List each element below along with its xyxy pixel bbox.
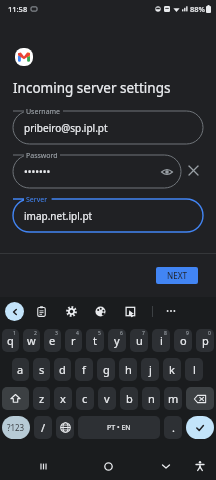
button[interactable]: x (54, 387, 72, 410)
button[interactable]: z (33, 387, 50, 410)
staticText: 8 (164, 330, 167, 337)
staticText: 2 (34, 330, 37, 337)
staticText: l (193, 362, 196, 377)
staticText: h (125, 362, 132, 377)
staticText: k (169, 362, 175, 377)
button[interactable]: Settings (62, 302, 80, 320)
button[interactable]: PT • EN (78, 416, 160, 439)
staticText: ••••••• (24, 165, 51, 179)
button[interactable]: Clear password (184, 161, 202, 179)
staticText: o (180, 333, 187, 348)
staticText: Password (26, 151, 58, 161)
button[interactable]: i (152, 329, 170, 352)
staticText: w (27, 333, 36, 348)
staticText: z (39, 391, 45, 406)
staticText: e (49, 333, 56, 348)
button[interactable]: . (164, 416, 182, 439)
staticText: PT • EN (107, 423, 131, 433)
staticText: m (168, 391, 179, 406)
button[interactable]: Backspace (186, 387, 214, 410)
staticText: 1 (13, 330, 16, 337)
button[interactable]: a (12, 358, 29, 381)
button[interactable]: Expand toolbar (5, 302, 24, 321)
staticText: 6 (120, 330, 123, 337)
button[interactable]: l (185, 358, 203, 381)
button[interactable]: j (141, 358, 159, 381)
button[interactable]: ?123 (2, 416, 30, 439)
button[interactable]: s (33, 358, 50, 381)
button[interactable]: p (196, 329, 214, 352)
button[interactable]: b (120, 387, 138, 410)
staticText: d (59, 362, 66, 377)
button[interactable]: n (142, 387, 160, 410)
button[interactable]: Stickers (121, 302, 139, 320)
staticText: t (93, 333, 97, 348)
button[interactable]: h (119, 358, 137, 381)
staticText: Server (26, 195, 48, 205)
staticText: p (202, 333, 209, 348)
button[interactable]: o (174, 329, 192, 352)
staticText: f (82, 362, 86, 377)
staticText: Username (26, 107, 61, 117)
staticText: / (41, 420, 46, 435)
button[interactable]: u (130, 329, 148, 352)
staticText: pribeiro@sp.ipl.pt (24, 121, 108, 135)
staticText: imap.net.ipl.pt (24, 209, 93, 223)
staticText: 5 (98, 330, 101, 337)
button[interactable]: Accessibility (186, 452, 214, 480)
staticText: 88% (190, 4, 205, 14)
button[interactable]: f (75, 358, 93, 381)
button[interactable] (13, 111, 203, 144)
staticText: v (104, 391, 110, 406)
staticText: b (126, 391, 133, 406)
button[interactable]: r (65, 329, 82, 352)
button[interactable]: Clipboard (32, 302, 50, 320)
button[interactable]: d (54, 358, 71, 381)
staticText: ?123 (7, 422, 25, 433)
button[interactable]: / (34, 416, 52, 439)
button[interactable]: g (97, 358, 115, 381)
staticText: g (103, 362, 110, 377)
button[interactable]: m (164, 387, 182, 410)
button[interactable]: y (108, 329, 126, 352)
button[interactable]: Recents (29, 452, 57, 480)
staticText: . (172, 420, 175, 435)
button[interactable]: w (23, 329, 40, 352)
staticText: 0 (208, 330, 211, 337)
button[interactable]: t (86, 329, 104, 352)
button[interactable] (13, 155, 181, 188)
button[interactable]: k (163, 358, 181, 381)
button[interactable]: Change language (56, 416, 74, 439)
button[interactable] (13, 199, 203, 232)
button[interactable]: Show password (160, 165, 174, 179)
staticText: Incoming server settings (13, 79, 171, 97)
staticText: n (148, 391, 155, 406)
button[interactable]: More options (162, 302, 180, 320)
button[interactable]: Enter (186, 416, 214, 439)
staticText: NEXT (167, 270, 188, 281)
staticText: r (71, 333, 76, 348)
staticText: s (39, 362, 45, 377)
button[interactable]: Home (94, 452, 122, 480)
staticText: j (149, 362, 152, 377)
staticText: 11:58 (8, 4, 28, 14)
staticText: 3 (55, 330, 58, 337)
staticText: a (17, 362, 24, 377)
button[interactable]: Theme (91, 302, 109, 320)
staticText: y (114, 333, 120, 348)
staticText: 4 (76, 330, 79, 337)
button[interactable]: q (2, 329, 19, 352)
staticText: 9 (186, 330, 189, 337)
staticText: x (60, 391, 66, 406)
button[interactable]: c (76, 387, 94, 410)
button[interactable]: Hide keyboard (152, 452, 180, 480)
staticText: q (7, 333, 14, 348)
button[interactable]: e (44, 329, 61, 352)
staticText: c (82, 391, 88, 406)
staticText: 7 (142, 330, 145, 337)
button[interactable]: Shift (2, 387, 29, 410)
button[interactable]: NEXT (156, 267, 198, 284)
button[interactable]: v (98, 387, 116, 410)
staticText: u (136, 333, 143, 348)
staticText: i (160, 333, 163, 348)
